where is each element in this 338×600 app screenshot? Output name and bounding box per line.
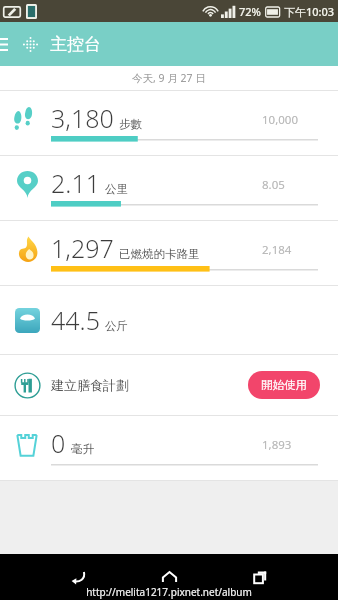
staticText: 2,184 (262, 242, 292, 258)
staticText: 步數 (119, 117, 142, 131)
button[interactable]: 2.11 (0, 156, 338, 220)
staticText: 今天, 9 月 27 日 (132, 71, 206, 85)
staticText: 公斤 (105, 319, 128, 333)
staticText: 下午10:03 (284, 4, 335, 19)
staticText: 3,180 (51, 101, 114, 135)
staticText: 72% (239, 4, 261, 19)
staticText: 0 (51, 426, 66, 460)
staticText: 10,000 (262, 112, 298, 128)
staticText: 建立膳食計劃 (51, 377, 129, 393)
button[interactable]: Home (153, 561, 185, 593)
button[interactable]: Back (62, 561, 94, 593)
button[interactable]: 開始使用 (248, 371, 320, 399)
button[interactable]: 建立膳食計劃 (0, 355, 338, 415)
button[interactable]: 1,297 (0, 221, 338, 285)
staticText: 主控台 (50, 34, 101, 55)
staticText: 1,297 (51, 231, 114, 265)
staticText: 44.5 (51, 303, 100, 337)
staticText: 2.11 (51, 166, 100, 200)
button[interactable]: 3,180 (0, 91, 338, 155)
staticText: http://melita1217.pixnet.net/album (0, 585, 338, 599)
button[interactable]: 0 (0, 416, 338, 480)
button[interactable]: 44.5 (0, 286, 338, 354)
button[interactable]: Recent apps (244, 561, 276, 593)
staticText: 1,893 (262, 437, 292, 453)
staticText: 毫升 (71, 442, 94, 456)
staticText: 8.05 (262, 177, 285, 193)
button[interactable]: Menu (0, 22, 15, 66)
staticText: 公里 (105, 182, 128, 196)
staticText: 開始使用 (261, 378, 307, 392)
staticText: 已燃燒的卡路里 (119, 247, 200, 261)
